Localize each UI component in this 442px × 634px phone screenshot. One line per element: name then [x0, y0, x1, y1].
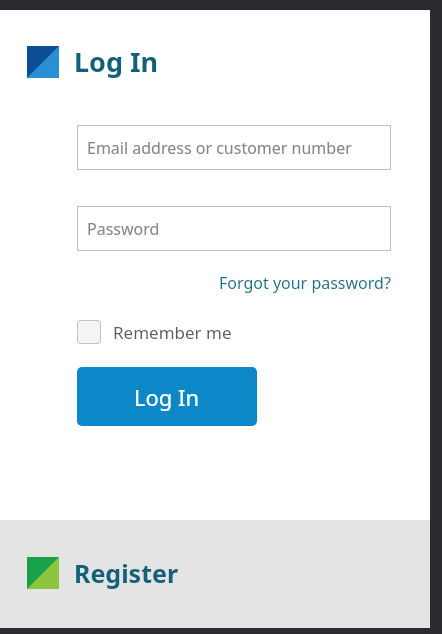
button[interactable]: Email address or customer number: [77, 125, 391, 170]
staticText: Log In: [134, 382, 200, 412]
button[interactable]: Password: [77, 206, 391, 251]
staticText: Remember me: [113, 321, 232, 344]
button[interactable]: Forgot your password?: [219, 272, 391, 294]
button[interactable]: Remember me: [77, 320, 232, 344]
button[interactable]: Log in icon: [27, 43, 159, 80]
staticText: Email address or customer number: [87, 137, 352, 159]
other: Register icon: [27, 557, 59, 589]
staticText: Log In: [74, 43, 159, 80]
other: Log in icon: [27, 46, 59, 78]
button[interactable]: Log In: [77, 367, 257, 426]
staticText: Password: [87, 218, 160, 240]
staticText: Register: [74, 556, 179, 590]
button[interactable]: Register icon: [27, 556, 179, 590]
